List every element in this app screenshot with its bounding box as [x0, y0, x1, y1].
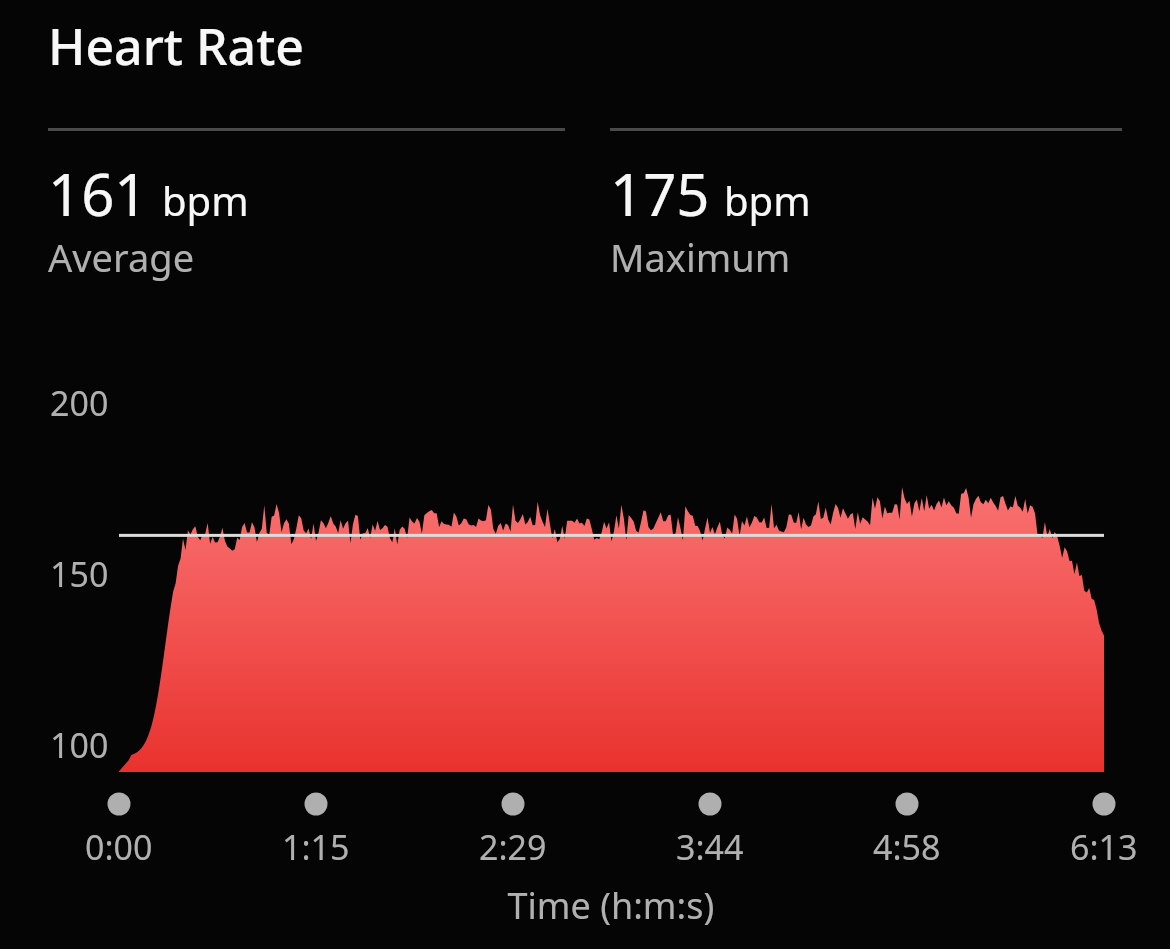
button[interactable]: Heart rate workout chart [0, 0, 1170, 949]
